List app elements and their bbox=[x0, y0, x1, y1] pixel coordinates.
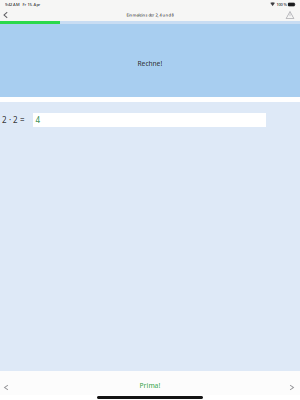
staticText: 9:42 AM bbox=[5, 2, 20, 7]
staticText: 100 % bbox=[276, 2, 286, 7]
button[interactable]: Previous field bbox=[0, 371, 12, 395]
button[interactable]: Back bbox=[0, 9, 11, 21]
staticText: Rechne! bbox=[137, 59, 162, 68]
button[interactable]: 4 bbox=[33, 113, 266, 127]
staticText: Einmaleins der 2, 4 und 8 bbox=[126, 12, 173, 18]
staticText: 2 · 2 = bbox=[2, 115, 25, 125]
button[interactable]: Warning bbox=[282, 9, 300, 21]
staticText: Fr 15. Apr bbox=[22, 2, 40, 7]
staticText: 4 bbox=[35, 115, 40, 125]
button[interactable]: Next field bbox=[286, 371, 300, 395]
staticText: Prima! bbox=[139, 381, 160, 390]
